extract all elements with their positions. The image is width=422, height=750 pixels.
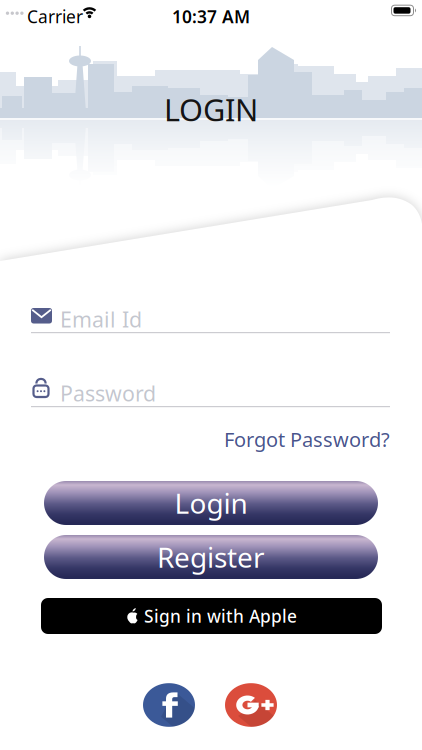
button[interactable]: Register	[44, 535, 378, 579]
button[interactable]: Sign in with Apple	[41, 598, 382, 634]
staticText: Forgot Password?	[224, 426, 390, 453]
staticText: Email Id	[60, 305, 142, 333]
staticText: 10:37 AM	[172, 5, 250, 28]
button[interactable]: Email Id	[31, 304, 390, 334]
button[interactable]: Login	[44, 481, 378, 525]
staticText: Login	[174, 484, 247, 522]
button[interactable]: Sign in with Facebook	[143, 679, 195, 731]
staticText: Carrier	[27, 5, 83, 28]
staticText: Register	[157, 538, 265, 576]
staticText: Password	[60, 379, 156, 407]
button[interactable]: Forgot Password?	[224, 426, 390, 453]
staticText: Sign in with Apple	[144, 604, 297, 627]
staticText: LOGIN	[164, 89, 258, 130]
button[interactable]: Sign in with Google	[225, 679, 277, 731]
button[interactable]: Password	[31, 377, 390, 408]
